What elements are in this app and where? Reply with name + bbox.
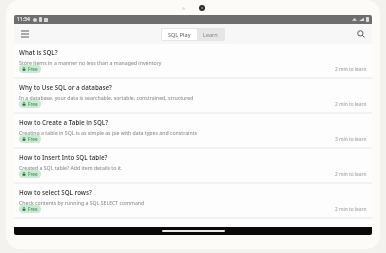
- button[interactable]: Learn: [197, 29, 224, 40]
- button[interactable]: Free: [19, 65, 41, 73]
- staticText: How to Create a Table in SQL?: [19, 118, 109, 126]
- button[interactable]: Home gesture: [162, 230, 225, 232]
- button[interactable]: Free: [19, 135, 41, 143]
- staticText: What is SQL?: [19, 48, 58, 56]
- staticText: Free: [28, 101, 38, 107]
- staticText: 2 min to learn: [335, 171, 367, 178]
- staticText: Free: [28, 171, 38, 177]
- staticText: 2 min to learn: [335, 101, 367, 108]
- button[interactable]: Open navigation menu: [18, 27, 32, 41]
- staticText: Store items in a manner no less than a m…: [19, 59, 162, 66]
- button[interactable]: Free: [19, 205, 41, 213]
- button[interactable]: Free: [19, 170, 41, 178]
- staticText: How to select SQL rows?: [19, 188, 92, 196]
- button[interactable]: Free: [19, 100, 41, 108]
- staticText: Free: [28, 66, 38, 72]
- staticText: 2 min to learn: [335, 66, 367, 73]
- staticText: Free: [28, 136, 38, 142]
- staticText: Check contents by running a SQL SELECT c…: [19, 199, 145, 206]
- button[interactable]: Search: [354, 27, 368, 41]
- button[interactable]: How to select SQL rows?: [14, 184, 372, 217]
- staticText: Creating a table in SQL is as simple as …: [19, 129, 197, 136]
- staticText: SQL Play: [168, 31, 191, 38]
- staticText: Learn: [203, 31, 218, 38]
- staticText: 2 min to learn: [335, 206, 367, 213]
- button[interactable]: What is SQL?: [14, 44, 372, 77]
- staticText: Created a SQL table? Add item details to…: [19, 164, 123, 171]
- staticText: How to Insert Into SQL table?: [19, 153, 108, 161]
- staticText: 11:34: [17, 16, 30, 23]
- staticText: Why to Use SQL or a database?: [19, 83, 112, 91]
- button[interactable]: How to Insert Into SQL table?: [14, 149, 372, 182]
- button[interactable]: SQL Play: [162, 29, 197, 40]
- button[interactable]: Why to Use SQL or a database?: [14, 79, 372, 112]
- staticText: 3 min to learn: [335, 136, 367, 143]
- button[interactable]: How to Create a Table in SQL?: [14, 114, 372, 147]
- staticText: In a database, your data is searchable, …: [19, 94, 194, 101]
- staticText: Free: [28, 206, 38, 212]
